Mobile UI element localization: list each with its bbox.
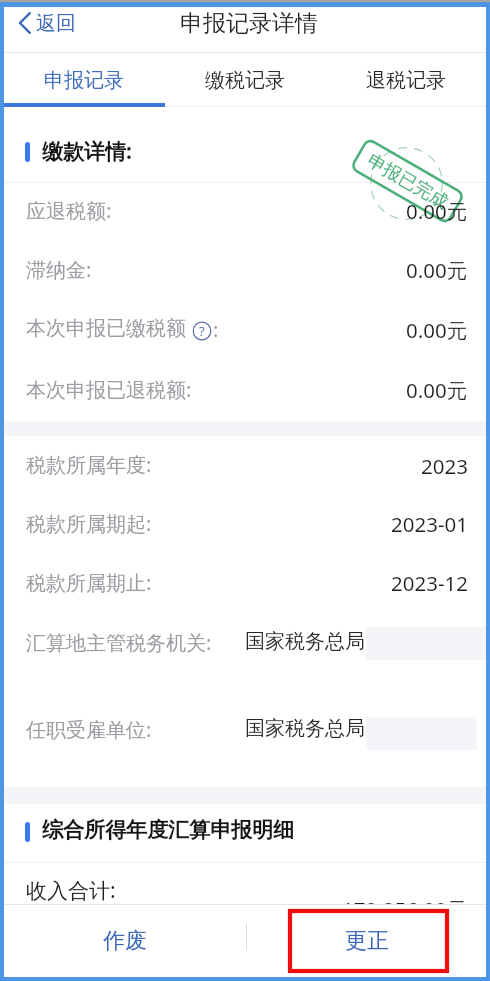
staticText: 综合所得年度汇算申报明细 <box>42 817 294 843</box>
staticText: 汇算地主管税务机关: <box>26 629 212 656</box>
staticText: 任职受雇单位: <box>26 716 152 743</box>
button[interactable]: 更正 <box>247 905 486 977</box>
staticText: 2023-12 <box>391 569 468 597</box>
staticText: 179,256.00元 <box>342 895 468 923</box>
staticText: 0.00元 <box>406 256 468 284</box>
button[interactable]: 缴税记录 <box>164 53 325 107</box>
staticText: 作废 <box>103 927 147 955</box>
staticText: 国家税务总局 <box>245 629 365 654</box>
staticText: 2023 <box>421 452 468 480</box>
staticText: 申报已完成 <box>363 149 452 214</box>
staticText: 本次申报已缴税额 <box>26 316 186 341</box>
staticText: 本次申报已退税额: <box>26 376 192 403</box>
staticText: 0.00元 <box>406 197 468 225</box>
staticText: 0.00元 <box>406 376 468 404</box>
staticText: 税款所属年度: <box>26 451 152 478</box>
button[interactable]: 作废 <box>4 905 246 977</box>
button[interactable]: 帮助 <box>192 321 212 341</box>
staticText: : <box>213 316 219 343</box>
button[interactable]: 退税记录 <box>325 53 486 107</box>
staticText: 2023-01 <box>391 510 468 538</box>
staticText: 缴款详情: <box>42 137 132 166</box>
staticText: 返回 <box>36 11 76 36</box>
staticText: 滞纳金: <box>26 256 92 283</box>
staticText: 应退税额: <box>26 197 112 224</box>
button[interactable]: 返回 <box>18 9 76 37</box>
staticText: ? <box>199 322 205 340</box>
staticText: 0.00元 <box>406 316 468 344</box>
staticText: 国家税务总局 <box>245 716 365 741</box>
staticText: 税款所属期止: <box>26 569 152 596</box>
staticText: 申报记录 <box>44 68 124 93</box>
staticText: 更正 <box>345 927 389 955</box>
staticText: 税款所属期起: <box>26 510 152 537</box>
staticText: 缴税记录 <box>205 68 285 93</box>
staticText: 退税记录 <box>366 68 446 93</box>
staticText: 申报记录详情 <box>180 9 318 37</box>
staticText: 收入合计: <box>26 876 116 905</box>
button[interactable]: 申报记录 <box>4 53 164 107</box>
